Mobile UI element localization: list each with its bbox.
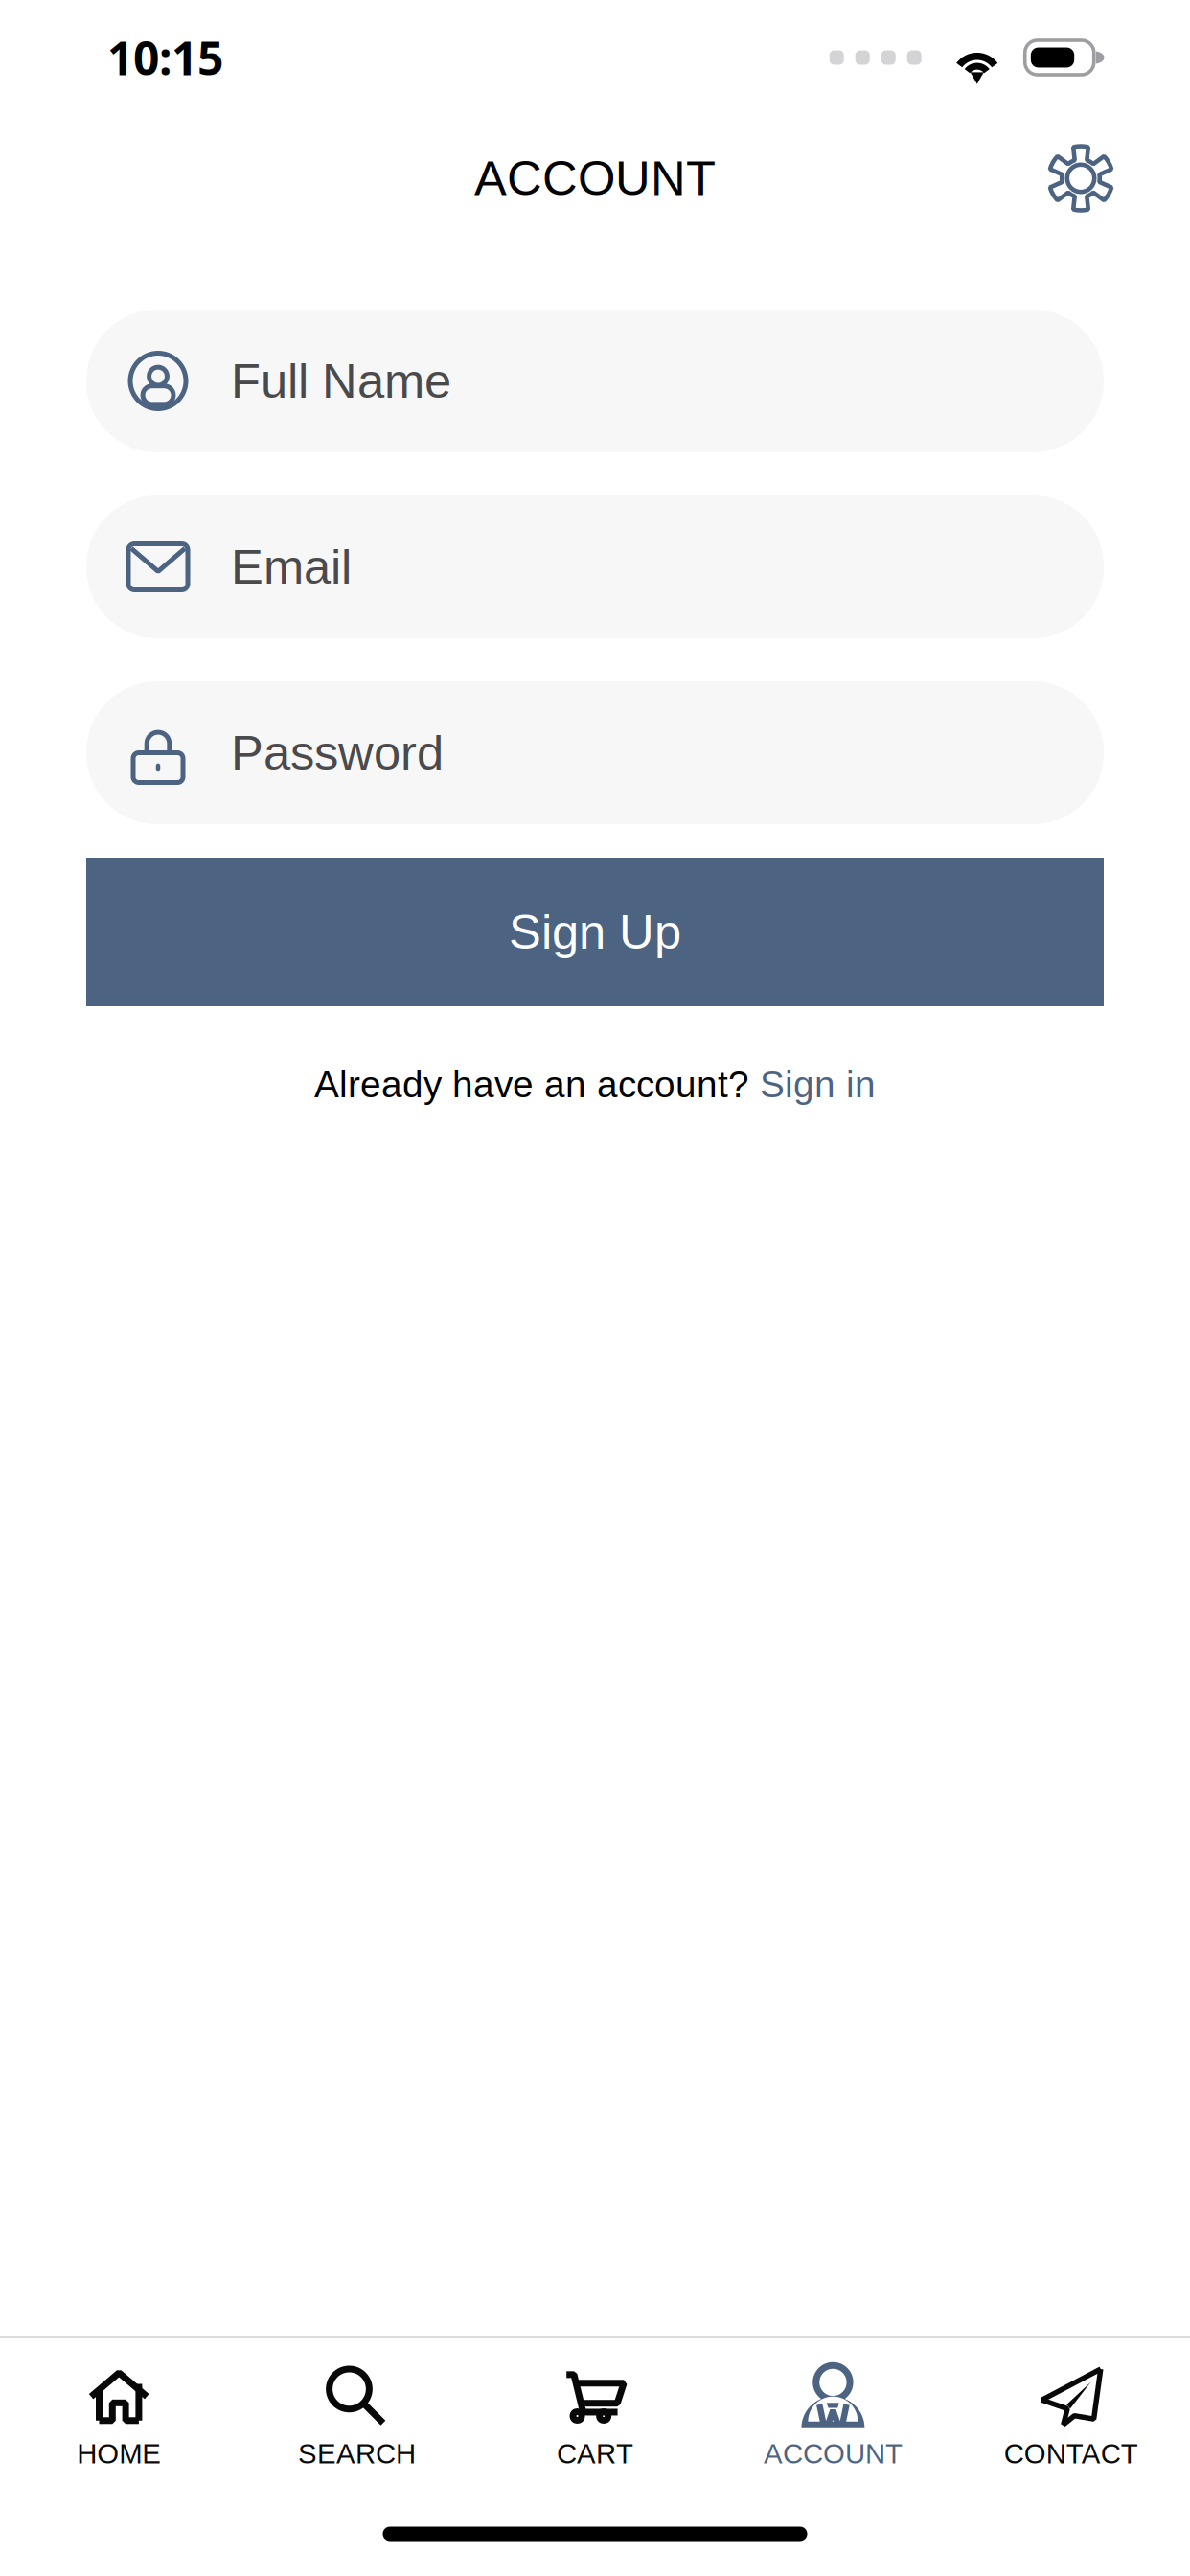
button[interactable]: Password (86, 681, 1104, 824)
button[interactable]: CONTACT (952, 2338, 1190, 2492)
staticText: Already have an account? (314, 1064, 760, 1105)
button[interactable]: Email (86, 495, 1104, 638)
button[interactable]: Already have an account? (0, 1034, 1190, 1121)
button[interactable]: Full Name (86, 310, 1104, 452)
staticText: Password (231, 726, 444, 780)
staticText: Email (231, 540, 352, 594)
staticText: Sign in (760, 1064, 876, 1105)
button[interactable]: Sign Up (86, 858, 1104, 1006)
staticText: Full Name (231, 354, 451, 408)
button[interactable]: HOME (0, 2338, 238, 2492)
staticText: ACCOUNT (474, 151, 716, 205)
button[interactable]: CART (476, 2338, 714, 2492)
staticText: CONTACT (1004, 2438, 1138, 2469)
button[interactable]: Settings (1031, 128, 1131, 228)
staticText: HOME (77, 2438, 161, 2469)
staticText: Sign Up (509, 905, 681, 959)
button[interactable]: SEARCH (238, 2338, 476, 2492)
staticText: 10:15 (107, 26, 223, 89)
staticText: SEARCH (298, 2438, 416, 2469)
staticText: CART (557, 2438, 633, 2469)
staticText: ACCOUNT (764, 2438, 902, 2469)
button[interactable]: ACCOUNT (714, 2338, 952, 2492)
